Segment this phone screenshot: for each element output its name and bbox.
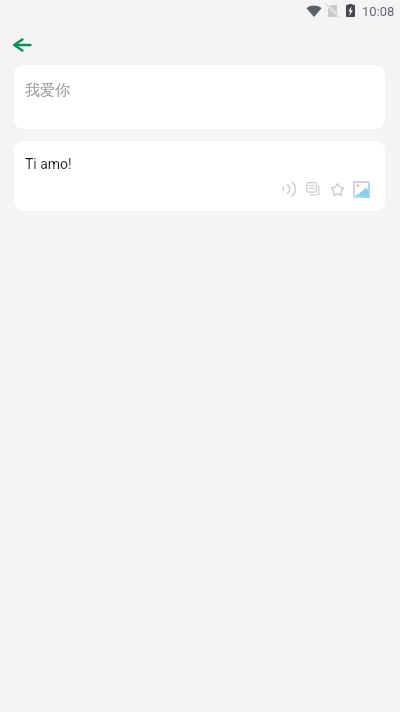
button[interactable]: 我爱你 bbox=[14, 65, 385, 129]
staticText: 我爱你 bbox=[25, 81, 70, 100]
button[interactable]: Favorite bbox=[325, 177, 349, 201]
button[interactable]: Share image bbox=[349, 177, 373, 201]
staticText: 10:08 bbox=[362, 4, 395, 19]
button[interactable]: Copy bbox=[301, 177, 325, 201]
button[interactable]: Back bbox=[3, 26, 40, 63]
button[interactable]: Listen bbox=[277, 177, 301, 201]
staticText: Ti amo! bbox=[25, 156, 72, 172]
